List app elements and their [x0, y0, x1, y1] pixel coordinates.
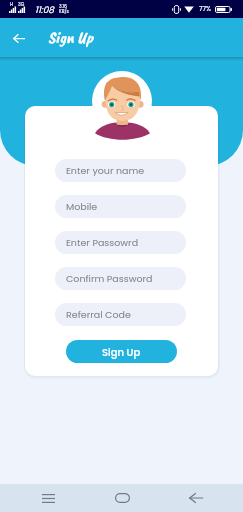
staticText: Mobile	[66, 200, 98, 213]
staticText: Sign Up	[102, 345, 141, 359]
staticText: 3.16 KB/s	[59, 3, 69, 15]
button[interactable]: Referral Code	[55, 303, 186, 326]
button[interactable]: Enter your name	[55, 159, 186, 182]
button[interactable]: Enter Passowrd	[55, 231, 186, 254]
staticText: 11:08	[35, 4, 55, 17]
staticText: 3G	[18, 1, 25, 7]
button[interactable]: Confirm Password	[55, 267, 186, 290]
button[interactable]: Recent apps	[20, 484, 76, 512]
staticText: H	[10, 1, 14, 7]
staticText: Enter Passowrd	[66, 236, 139, 249]
button[interactable]: Home	[94, 484, 150, 512]
staticText: 77%	[199, 4, 212, 13]
button[interactable]: Mobile	[55, 195, 186, 218]
staticText: Confirm Password	[66, 272, 153, 285]
staticText: Enter your name	[66, 164, 145, 177]
button[interactable]: Back	[8, 27, 30, 49]
button[interactable]: Back	[168, 484, 224, 512]
button[interactable]: Sign Up	[66, 340, 177, 363]
staticText: Sign Up	[48, 27, 93, 48]
staticText: Referral Code	[66, 308, 131, 321]
